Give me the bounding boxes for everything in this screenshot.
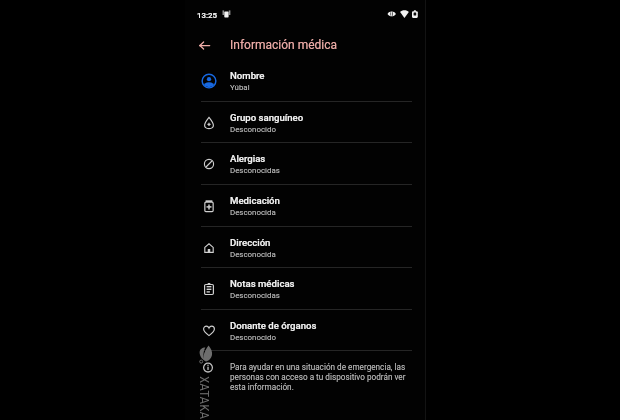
staticText: Desconocido xyxy=(230,125,276,134)
staticText: Información médica xyxy=(230,38,338,52)
staticText: Nombre xyxy=(230,70,265,81)
staticText: Para ayudar en una situación de emergenc… xyxy=(230,362,412,392)
staticText: Medicación xyxy=(230,195,280,206)
staticText: Desconocidas xyxy=(230,291,280,300)
staticText: Desconocida xyxy=(230,250,276,259)
staticText: Desconocida xyxy=(230,208,276,217)
staticText: Desconocidas xyxy=(230,166,280,175)
staticText: Dirección xyxy=(230,237,271,248)
staticText: XATAKA xyxy=(198,376,212,420)
button[interactable]: Donante de órganos xyxy=(185,310,425,352)
button[interactable]: Alergias xyxy=(185,143,425,185)
button[interactable]: Grupo sanguíneo xyxy=(185,102,425,144)
staticText: Yúbal xyxy=(230,83,250,92)
staticText: Grupo sanguíneo xyxy=(230,112,304,123)
staticText: Desconocido xyxy=(230,333,276,342)
staticText: Notas médicas xyxy=(230,278,295,289)
staticText: Alergias xyxy=(230,153,266,164)
button[interactable]: Medicación xyxy=(185,185,425,227)
button[interactable]: Notas médicas xyxy=(185,268,425,310)
button[interactable]: Back xyxy=(194,35,214,55)
staticText: 13:25 xyxy=(197,11,218,20)
button[interactable]: Dirección xyxy=(185,227,425,269)
button[interactable]: Nombre xyxy=(185,60,425,102)
staticText: Donante de órganos xyxy=(230,320,317,331)
